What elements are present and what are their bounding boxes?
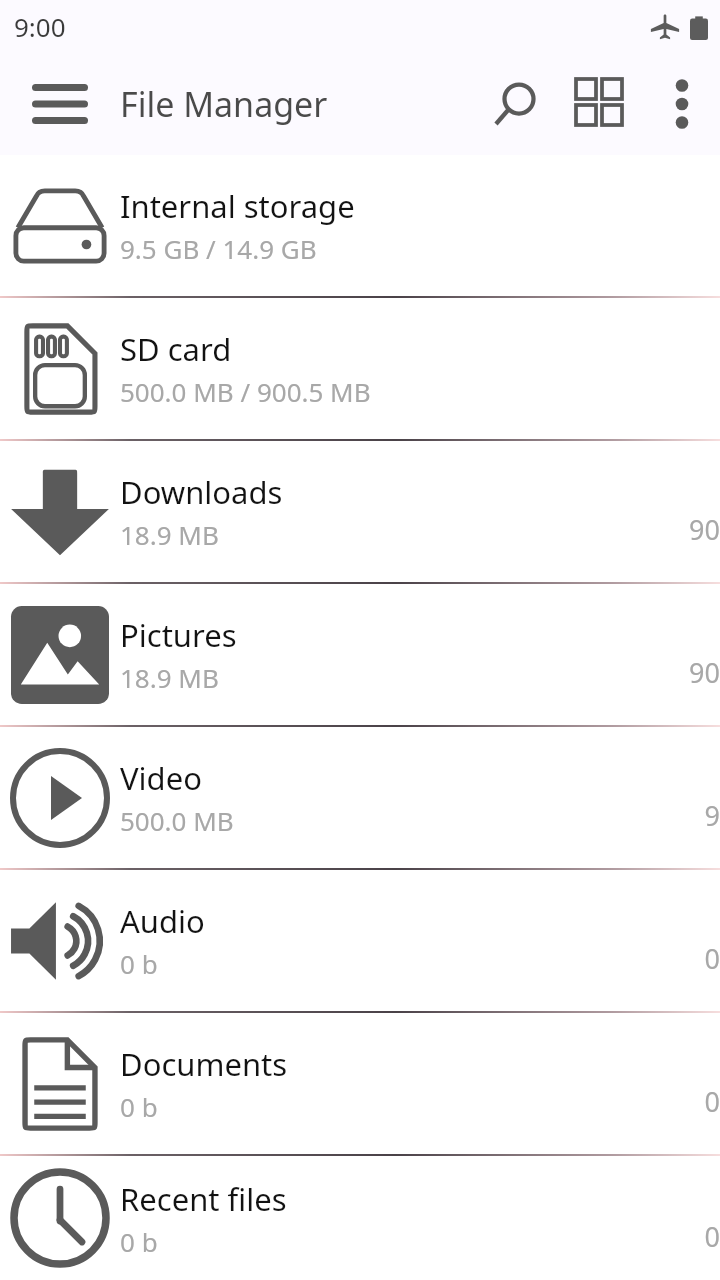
button[interactable]: Open navigation menu: [26, 70, 94, 138]
staticText: 0 b: [120, 946, 158, 981]
button[interactable]: Video: [0, 727, 720, 868]
button[interactable]: Documents: [0, 1013, 720, 1154]
button[interactable]: Change view: [558, 61, 644, 147]
staticText: 90: [689, 654, 720, 691]
staticText: Downloads: [120, 471, 283, 513]
button[interactable]: Pictures: [0, 584, 720, 725]
staticText: SD card: [120, 328, 232, 370]
staticText: 0 b: [120, 1089, 158, 1124]
staticText: 18.9 MB: [120, 517, 219, 552]
staticText: 0 b: [120, 1224, 158, 1259]
staticText: 9:00: [14, 9, 66, 44]
staticText: File Manager: [120, 81, 328, 127]
button[interactable]: Search: [472, 61, 558, 147]
staticText: 0: [704, 1083, 720, 1120]
staticText: Pictures: [120, 614, 237, 656]
staticText: 18.9 MB: [120, 660, 219, 695]
staticText: 0: [704, 1218, 720, 1255]
button[interactable]: Recent files: [0, 1156, 720, 1280]
button[interactable]: Audio: [0, 870, 720, 1011]
button[interactable]: Downloads: [0, 441, 720, 582]
staticText: 90: [689, 511, 720, 548]
staticText: Internal storage: [120, 185, 355, 227]
button[interactable]: SD card: [0, 298, 720, 439]
staticText: 500.0 MB / 900.5 MB: [120, 374, 371, 409]
staticText: Video: [120, 757, 202, 799]
staticText: 9: [704, 797, 720, 834]
staticText: Recent files: [120, 1178, 287, 1220]
staticText: 500.0 MB: [120, 803, 234, 838]
staticText: Documents: [120, 1043, 288, 1085]
staticText: 9.5 GB / 14.9 GB: [120, 231, 317, 266]
button[interactable]: More options: [644, 66, 720, 142]
staticText: Audio: [120, 900, 205, 942]
staticText: 0: [704, 940, 720, 977]
button[interactable]: Internal storage: [0, 155, 720, 296]
